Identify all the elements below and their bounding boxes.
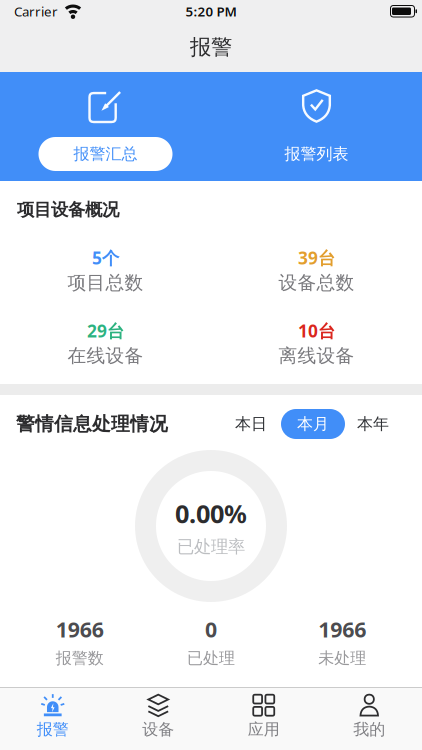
staticText: Carrier — [14, 2, 58, 20]
button[interactable]: 本月 — [281, 409, 345, 439]
staticText: 本年 — [357, 414, 389, 434]
button[interactable]: 报警汇总 — [0, 72, 211, 181]
staticText: 5:20 PM — [185, 2, 236, 20]
staticText: 在线设备 — [67, 344, 143, 367]
button[interactable]: 报警 — [0, 688, 105, 739]
staticText: 0.00% — [175, 496, 247, 530]
staticText: 项目设备概况 — [17, 199, 119, 220]
staticText: 离线设备 — [278, 344, 354, 367]
staticText: 报警 — [37, 720, 69, 739]
staticText: 本日 — [235, 414, 267, 434]
staticText: 1966 — [318, 615, 366, 643]
staticText: 39台 — [298, 246, 335, 269]
staticText: 已处理 — [187, 648, 235, 668]
staticText: 设备 — [142, 720, 174, 739]
staticText: 未处理 — [318, 648, 366, 668]
button[interactable]: 我的 — [316, 688, 422, 739]
staticText: 项目总数 — [67, 271, 143, 294]
staticText: 10台 — [298, 319, 335, 342]
button[interactable]: 本年 — [357, 414, 389, 434]
staticText: 报警列表 — [284, 144, 348, 164]
staticText: 警情信息处理情况 — [16, 412, 168, 435]
staticText: 本月 — [297, 414, 329, 434]
staticText: 我的 — [353, 720, 385, 739]
button[interactable]: 设备 — [105, 688, 211, 739]
staticText: 报警 — [190, 34, 232, 60]
staticText: 5个 — [92, 246, 119, 269]
button[interactable]: 本日 — [235, 414, 267, 434]
staticText: 设备总数 — [278, 271, 354, 294]
staticText: 报警汇总 — [73, 144, 137, 164]
button[interactable]: 应用 — [211, 688, 316, 739]
staticText: 已处理率 — [177, 536, 245, 557]
staticText: 0 — [205, 615, 217, 643]
staticText: 1966 — [56, 615, 104, 643]
staticText: 应用 — [248, 720, 280, 739]
staticText: 29台 — [87, 319, 124, 342]
staticText: 报警数 — [56, 648, 104, 668]
button[interactable]: 报警列表 — [211, 72, 422, 181]
